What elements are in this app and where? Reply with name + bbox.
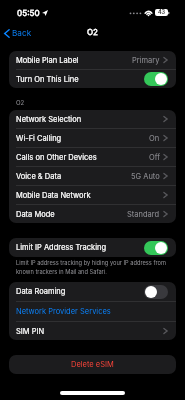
staticText: Primary bbox=[132, 56, 160, 65]
staticText: Data Mode bbox=[16, 210, 55, 219]
button[interactable]: SIM PIN bbox=[9, 322, 176, 340]
staticText: Mobile Data Network bbox=[16, 191, 91, 200]
staticText: Delete eSIM bbox=[71, 360, 114, 369]
button[interactable]: On bbox=[144, 241, 168, 255]
staticText: Data Roaming bbox=[16, 287, 66, 296]
staticText: Network Selection bbox=[16, 115, 82, 124]
button[interactable]: Network Selection bbox=[9, 110, 176, 128]
staticText: Wi-Fi Calling bbox=[16, 134, 62, 143]
button[interactable]: Turn On This Line bbox=[9, 70, 176, 88]
button[interactable]: Network Provider Services bbox=[9, 302, 176, 321]
staticText: Limit IP address tracking by hiding your… bbox=[16, 259, 178, 275]
staticText: Network Provider Services bbox=[16, 307, 111, 316]
staticText: 5G Auto bbox=[131, 172, 160, 181]
staticText: Turn On This Line bbox=[16, 75, 79, 84]
staticText: Limit IP Address Tracking bbox=[16, 243, 107, 252]
staticText: On bbox=[149, 134, 160, 143]
staticText: Off bbox=[149, 153, 160, 162]
button[interactable]: On bbox=[144, 72, 168, 86]
staticText: Calls on Other Devices bbox=[16, 153, 97, 162]
button[interactable]: Off bbox=[144, 285, 168, 299]
staticText: 05:50 bbox=[17, 8, 40, 18]
button[interactable]: Mobile Data Network bbox=[9, 186, 176, 204]
staticText: O2 bbox=[87, 27, 98, 37]
button[interactable]: Mobile Plan Label bbox=[9, 51, 176, 69]
button[interactable]: Back bbox=[0, 25, 38, 39]
staticText: O2 bbox=[16, 99, 25, 106]
staticText: Mobile Plan Label bbox=[16, 56, 79, 65]
staticText: Standard bbox=[127, 210, 160, 219]
button[interactable]: Calls on Other Devices bbox=[9, 148, 176, 166]
button[interactable]: Wi-Fi Calling bbox=[9, 129, 176, 147]
button[interactable]: Limit IP Address Tracking bbox=[9, 238, 176, 257]
button[interactable]: Delete eSIM bbox=[9, 355, 176, 374]
staticText: Voice & Data bbox=[16, 172, 62, 181]
staticText: 43 bbox=[158, 9, 166, 16]
button[interactable]: Voice & Data bbox=[9, 167, 176, 185]
button[interactable]: Data Mode bbox=[9, 205, 176, 223]
staticText: Back bbox=[12, 28, 32, 38]
button[interactable]: Data Roaming bbox=[9, 282, 176, 301]
staticText: SIM PIN bbox=[16, 327, 45, 336]
